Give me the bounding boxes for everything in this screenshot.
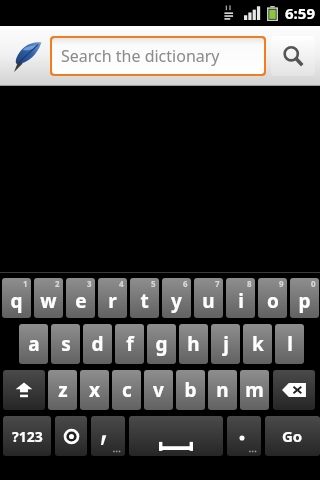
button[interactable]: Comma [91, 416, 125, 456]
staticText: s [61, 331, 71, 357]
button[interactable]: v [144, 370, 173, 410]
button[interactable]: 0 [290, 278, 319, 318]
staticText: 6 [183, 278, 188, 289]
staticText: k [252, 331, 264, 357]
staticText: 4 [119, 278, 124, 289]
staticText: f [126, 331, 134, 357]
button[interactable]: Shift [3, 370, 45, 410]
button[interactable]: Search [271, 36, 315, 76]
button[interactable]: 2 [34, 278, 63, 318]
staticText: 3 [87, 278, 92, 289]
staticText: Search the dictionary [61, 45, 220, 67]
staticText: o [267, 288, 279, 314]
button[interactable]: 5 [130, 278, 159, 318]
staticText: 2 [55, 278, 60, 289]
staticText: ?123 [12, 427, 43, 446]
button[interactable]: Voice input [55, 416, 87, 456]
button[interactable]: x [80, 370, 109, 410]
button[interactable]: Go [265, 416, 320, 456]
staticText: a [28, 331, 40, 357]
staticText: i [238, 288, 244, 314]
button[interactable]: d [83, 324, 112, 364]
button[interactable]: z [48, 370, 77, 410]
button[interactable]: l [275, 324, 304, 364]
button[interactable]: Symbols [3, 416, 51, 456]
staticText: c [122, 377, 132, 403]
button[interactable]: n [208, 370, 237, 410]
staticText: x [89, 377, 100, 403]
staticText: t [140, 288, 149, 314]
staticText: 9 [279, 278, 284, 289]
button[interactable]: s [51, 324, 80, 364]
staticText: n [216, 377, 229, 403]
button[interactable]: 8 [226, 278, 255, 318]
button[interactable]: 1 [2, 278, 31, 318]
staticText: y [171, 288, 182, 314]
staticText: 7 [215, 278, 220, 289]
staticText: g [155, 331, 168, 357]
staticText: p [298, 288, 311, 314]
staticText: v [153, 377, 164, 403]
staticText: j [223, 331, 229, 357]
staticText: 0 [311, 278, 316, 289]
button[interactable]: Period [227, 416, 261, 456]
button[interactable]: b [176, 370, 205, 410]
button[interactable]: 9 [258, 278, 287, 318]
staticText: 1 [23, 278, 28, 289]
staticText: e [75, 288, 87, 314]
button[interactable]: 6 [162, 278, 191, 318]
staticText: Go [282, 426, 303, 446]
button[interactable]: m [240, 370, 269, 410]
staticText: h [187, 331, 200, 357]
staticText: 6:59 [285, 3, 315, 23]
staticText: q [10, 288, 23, 314]
button[interactable]: k [243, 324, 272, 364]
staticText: z [58, 377, 68, 403]
staticText: u [202, 288, 215, 314]
button[interactable]: g [147, 324, 176, 364]
button[interactable]: h [179, 324, 208, 364]
button[interactable]: j [211, 324, 240, 364]
staticText: 5 [151, 278, 156, 289]
button[interactable]: f [115, 324, 144, 364]
staticText: w [40, 288, 57, 314]
button[interactable]: c [112, 370, 141, 410]
staticText: r [108, 288, 117, 314]
staticText: l [287, 331, 293, 357]
staticText: d [91, 331, 104, 357]
button[interactable]: App logo [6, 36, 46, 76]
staticText: m [245, 377, 264, 403]
button[interactable]: 4 [98, 278, 127, 318]
button[interactable]: Space [129, 416, 223, 456]
button[interactable]: Delete [273, 370, 315, 410]
staticText: b [184, 377, 197, 403]
staticText: 8 [247, 278, 252, 289]
button[interactable]: 7 [194, 278, 223, 318]
button[interactable]: a [19, 324, 48, 364]
button[interactable]: 3 [66, 278, 95, 318]
button[interactable]: Search the dictionary [52, 38, 264, 74]
